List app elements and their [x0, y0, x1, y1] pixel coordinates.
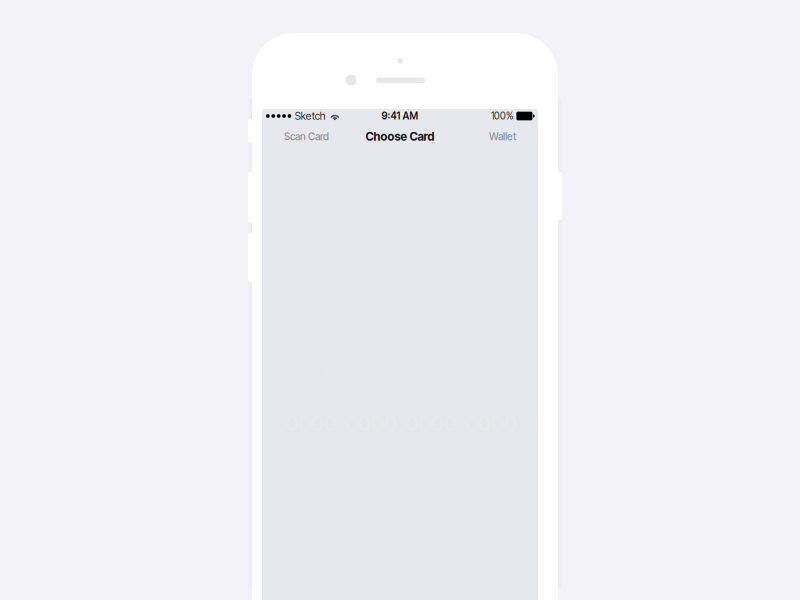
button[interactable]: Wallet	[480, 124, 525, 149]
staticText: Wallet	[489, 130, 516, 143]
staticText: 100%	[491, 110, 513, 122]
button[interactable]: Scan Card	[275, 124, 338, 149]
staticText: 9:41 AM	[381, 110, 418, 122]
staticText: Sketch	[295, 110, 326, 122]
button[interactable]: Choose Card	[355, 124, 444, 148]
staticText: Choose Card	[365, 129, 434, 143]
staticText: Scan Card	[284, 130, 329, 143]
